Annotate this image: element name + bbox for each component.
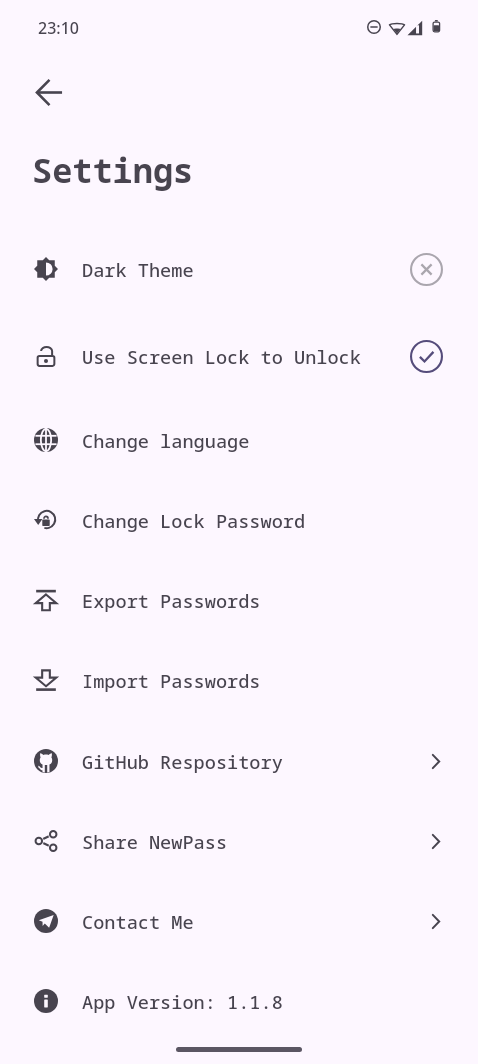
- button[interactable]: Change Lock Password: [0, 480, 478, 560]
- button[interactable]: Export Passwords: [0, 560, 478, 640]
- staticText: Settings: [32, 147, 194, 193]
- button[interactable]: Contact Me: [0, 881, 478, 961]
- staticText: 23:10: [38, 17, 79, 39]
- button[interactable]: Share NewPass: [0, 801, 478, 881]
- staticText: Import Passwords: [82, 668, 261, 693]
- button[interactable]: Dark Theme: [0, 227, 478, 311]
- staticText: GitHub Respository: [82, 749, 283, 774]
- staticText: Contact Me: [82, 909, 194, 934]
- button[interactable]: Import Passwords: [0, 640, 478, 720]
- button[interactable]: Use Screen Lock to Unlock: [0, 312, 478, 400]
- staticText: App Version: 1.1.8: [82, 989, 283, 1014]
- staticText: Dark Theme: [82, 257, 194, 282]
- button[interactable]: Change language: [0, 400, 478, 480]
- staticText: Change Lock Password: [82, 508, 306, 533]
- button[interactable]: Back: [25, 68, 74, 117]
- staticText: Change language: [82, 428, 250, 453]
- button[interactable]: GitHub Respository: [0, 721, 478, 801]
- staticText: Share NewPass: [82, 829, 228, 854]
- staticText: Use Screen Lock to Unlock: [82, 344, 361, 369]
- button[interactable]: App Version: 1.1.8: [0, 961, 478, 1041]
- staticText: Export Passwords: [82, 588, 261, 613]
